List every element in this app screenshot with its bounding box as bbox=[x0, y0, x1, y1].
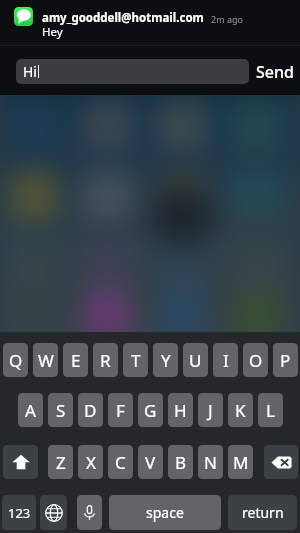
staticText: 123 bbox=[8, 504, 31, 522]
staticText: amy_gooddell@hotmail.com bbox=[42, 10, 204, 26]
staticText: U bbox=[189, 349, 202, 372]
staticText: B bbox=[175, 451, 187, 474]
staticText: Hi bbox=[23, 62, 37, 81]
staticText: G bbox=[144, 399, 157, 422]
button[interactable]: X bbox=[78, 445, 103, 479]
staticText: Z bbox=[56, 451, 66, 474]
button[interactable]: A bbox=[18, 393, 43, 427]
staticText: Q bbox=[9, 349, 23, 372]
button[interactable]: G bbox=[138, 393, 163, 427]
button[interactable]: M bbox=[228, 445, 253, 479]
staticText: M bbox=[233, 451, 249, 474]
button[interactable]: P bbox=[273, 343, 298, 377]
button[interactable]: Shift bbox=[3, 445, 38, 479]
staticText: 2m ago bbox=[211, 13, 243, 25]
button[interactable]: amy_gooddell@hotmail.com bbox=[0, 0, 300, 95]
button[interactable]: T bbox=[123, 343, 148, 377]
staticText: T bbox=[131, 349, 141, 372]
staticText: N bbox=[204, 451, 217, 474]
button[interactable]: C bbox=[108, 445, 133, 479]
button[interactable]: Z bbox=[48, 445, 73, 479]
staticText: A bbox=[25, 399, 36, 422]
staticText: O bbox=[249, 349, 263, 372]
button[interactable]: D bbox=[78, 393, 103, 427]
button[interactable]: H bbox=[168, 393, 193, 427]
button[interactable]: Numbers bbox=[2, 495, 36, 530]
button[interactable]: N bbox=[198, 445, 223, 479]
staticText: return bbox=[242, 503, 284, 522]
button[interactable]: B bbox=[168, 445, 193, 479]
staticText: F bbox=[116, 399, 125, 422]
staticText: L bbox=[266, 399, 275, 422]
button[interactable]: Q bbox=[3, 343, 28, 377]
button[interactable]: Dictate bbox=[77, 495, 102, 530]
button[interactable]: space bbox=[109, 495, 221, 530]
staticText: I bbox=[223, 349, 229, 372]
staticText: C bbox=[115, 451, 126, 474]
staticText: H bbox=[174, 399, 187, 422]
button[interactable]: Send bbox=[252, 59, 298, 84]
staticText: X bbox=[86, 451, 96, 474]
button[interactable]: L bbox=[258, 393, 283, 427]
button[interactable]: F bbox=[108, 393, 133, 427]
staticText: R bbox=[100, 349, 111, 372]
button[interactable]: Hi bbox=[16, 59, 249, 84]
staticText: J bbox=[208, 399, 213, 422]
button[interactable]: O bbox=[243, 343, 268, 377]
button[interactable]: K bbox=[228, 393, 253, 427]
staticText: E bbox=[71, 349, 81, 372]
button[interactable]: R bbox=[93, 343, 118, 377]
staticText: K bbox=[235, 399, 246, 422]
staticText: P bbox=[280, 349, 291, 372]
staticText: S bbox=[56, 399, 66, 422]
button[interactable]: Y bbox=[153, 343, 178, 377]
staticText: D bbox=[84, 399, 97, 422]
button[interactable]: Backspace bbox=[264, 445, 298, 479]
button[interactable]: W bbox=[33, 343, 58, 377]
button[interactable]: E bbox=[63, 343, 88, 377]
staticText: space bbox=[146, 503, 184, 522]
button[interactable]: Change language bbox=[40, 495, 67, 530]
staticText: Send bbox=[256, 61, 294, 83]
button[interactable]: I bbox=[213, 343, 238, 377]
staticText: V bbox=[145, 451, 156, 474]
staticText: Y bbox=[161, 349, 171, 372]
button[interactable]: U bbox=[183, 343, 208, 377]
button[interactable]: S bbox=[48, 393, 73, 427]
button[interactable]: return bbox=[228, 495, 297, 530]
button[interactable]: V bbox=[138, 445, 163, 479]
staticText: Hey bbox=[42, 24, 63, 40]
button[interactable]: J bbox=[198, 393, 223, 427]
staticText: W bbox=[38, 349, 54, 372]
